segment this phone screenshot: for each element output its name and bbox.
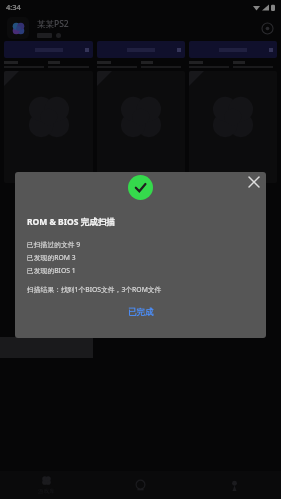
button[interactable] (189, 41, 277, 58)
button[interactable] (7, 17, 29, 39)
button[interactable] (97, 41, 185, 58)
button[interactable] (97, 71, 185, 183)
staticText: 4:34 (6, 2, 21, 12)
button[interactable]: Close (245, 173, 263, 191)
button[interactable]: Settings (260, 21, 274, 35)
staticText: 扫描结果：找到1个BIOS文件，3个ROM文件 (27, 285, 162, 294)
staticText: 已发现的BIOS 1 (27, 266, 76, 275)
button[interactable] (189, 71, 277, 183)
button[interactable]: 已完成 (114, 303, 168, 322)
button[interactable] (4, 71, 93, 183)
staticText: ROM & BIOS 完成扫描 (27, 216, 115, 228)
staticText: 已完成 (128, 307, 154, 318)
staticText: 某某PS2 (37, 18, 69, 30)
button[interactable] (4, 41, 93, 58)
staticText: 已扫描过的文件 9 (27, 240, 81, 249)
staticText: 已发现的ROM 3 (27, 253, 76, 262)
